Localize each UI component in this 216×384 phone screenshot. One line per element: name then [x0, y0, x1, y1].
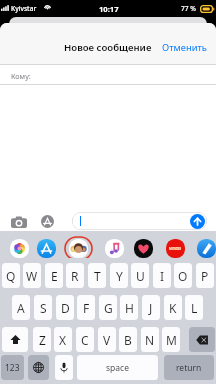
button[interactable]: Digital Touch — [129, 235, 157, 262]
button[interactable]: E — [45, 263, 63, 288]
button[interactable]: Кому: — [0, 65, 216, 84]
button[interactable]: Photos — [5, 235, 33, 262]
button[interactable]: T — [88, 263, 106, 288]
button[interactable]: Backspace — [189, 327, 215, 352]
button[interactable]: 123 — [1, 355, 24, 380]
button[interactable]: H — [120, 295, 138, 320]
staticText: space — [106, 362, 129, 374]
staticText: 77 % — [181, 4, 196, 13]
button[interactable]: Send — [72, 212, 207, 230]
button[interactable]: M — [162, 327, 180, 352]
staticText: U — [136, 268, 145, 284]
staticText: A — [17, 300, 25, 316]
staticText: Y — [116, 268, 123, 284]
staticText: 10:17 — [99, 4, 119, 14]
button[interactable]: App Store — [32, 235, 60, 262]
staticText: N — [145, 332, 155, 348]
button[interactable]: Movies — [161, 235, 189, 262]
staticText: M — [166, 332, 177, 348]
staticText: K — [169, 300, 177, 316]
button[interactable]: Shift — [2, 327, 28, 352]
staticText: H — [125, 300, 134, 316]
staticText: Q — [6, 268, 16, 284]
button[interactable]: Music — [100, 235, 128, 262]
button[interactable]: G — [99, 295, 117, 320]
button[interactable]: W — [23, 263, 41, 288]
button[interactable]: X — [54, 327, 72, 352]
button[interactable]: J — [142, 295, 160, 320]
staticText: G — [104, 300, 113, 316]
staticText: E — [51, 268, 58, 284]
staticText: 123 — [5, 362, 20, 374]
staticText: X — [59, 332, 67, 348]
button[interactable]: P — [196, 263, 214, 288]
staticText: J — [149, 300, 153, 316]
button[interactable]: N — [141, 327, 159, 352]
button[interactable]: Отменить — [156, 34, 212, 54]
staticText: Kyivstar — [11, 4, 37, 13]
button[interactable]: A — [12, 295, 30, 320]
staticText: P — [201, 268, 209, 284]
staticText: I — [160, 268, 165, 284]
button[interactable]: V — [98, 327, 116, 352]
button[interactable]: O — [174, 263, 192, 288]
button[interactable]: Dictation — [55, 355, 73, 380]
staticText: V — [103, 332, 111, 348]
button[interactable]: Notes — [192, 235, 216, 262]
staticText: Z — [39, 332, 46, 348]
button[interactable]: K — [164, 295, 182, 320]
button[interactable]: Y — [110, 263, 128, 288]
button[interactable]: B — [119, 327, 137, 352]
staticText: return — [176, 362, 202, 374]
button[interactable]: Q — [2, 263, 20, 288]
button[interactable]: Memoji — [64, 235, 92, 262]
button[interactable]: Z — [33, 327, 51, 352]
staticText: S — [40, 300, 47, 316]
button[interactable]: I — [153, 263, 171, 288]
staticText: R — [71, 268, 79, 284]
staticText: L — [191, 300, 198, 316]
button[interactable]: Camera — [8, 211, 29, 232]
staticText: T — [94, 268, 101, 284]
staticText: C — [81, 332, 89, 348]
button[interactable]: D — [56, 295, 74, 320]
button[interactable]: App Store — [37, 211, 58, 232]
button[interactable]: Send — [190, 214, 205, 229]
button[interactable]: R — [66, 263, 84, 288]
button[interactable]: space — [77, 355, 158, 380]
staticText: F — [83, 300, 90, 316]
staticText: W — [26, 268, 38, 284]
staticText: D — [61, 300, 70, 316]
button[interactable]: L — [185, 295, 203, 320]
staticText: O — [178, 268, 188, 284]
button[interactable]: F — [77, 295, 95, 320]
staticText: MOVIES — [169, 247, 181, 251]
button[interactable]: S — [34, 295, 52, 320]
button[interactable]: Switch keyboard — [28, 355, 49, 380]
button[interactable]: return — [164, 355, 214, 380]
button[interactable]: U — [131, 263, 149, 288]
staticText: Кому: — [11, 71, 31, 81]
button[interactable]: C — [76, 327, 94, 352]
staticText: Отменить — [162, 41, 207, 54]
staticText: Новое сообщение — [64, 41, 152, 54]
staticText: B — [124, 332, 132, 348]
